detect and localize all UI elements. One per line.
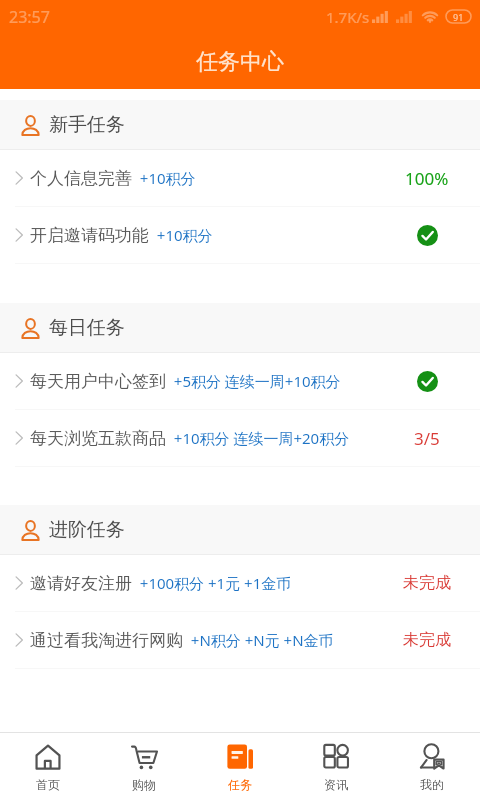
button[interactable]: 通过看我淘进行网购 +N积分 +N元 +N金币	[0, 612, 480, 668]
staticText: 每日任务	[49, 316, 125, 340]
staticText: 1.7K/s	[326, 7, 370, 27]
staticText: 我的	[420, 777, 444, 792]
staticText: 进阶任务	[49, 518, 125, 542]
staticText: 未完成	[403, 573, 451, 593]
button[interactable]: 购物	[96, 733, 192, 800]
button[interactable]: 首页	[0, 733, 96, 800]
button[interactable]: 任务	[192, 733, 288, 800]
staticText: 任务中心	[196, 48, 284, 76]
staticText: 购物	[132, 777, 156, 792]
staticText: 100%	[405, 167, 449, 190]
staticText: 新手任务	[49, 113, 125, 137]
staticText: 3/5	[414, 427, 440, 450]
button[interactable]: 每天浏览五款商品 +10积分 连续一周+20积分	[0, 410, 480, 466]
staticText: 每天浏览五款商品 +10积分 连续一周+20积分	[30, 428, 350, 449]
button[interactable]: 我的	[384, 733, 480, 800]
button[interactable]: 开启邀请码功能 +10积分	[0, 207, 480, 263]
staticText: 任务	[228, 777, 252, 792]
button[interactable]: 每天用户中心签到 +5积分 连续一周+10积分	[0, 353, 480, 409]
staticText: 个人信息完善 +10积分	[30, 168, 196, 189]
button[interactable]: 邀请好友注册 +100积分 +1元 +1金币	[0, 555, 480, 611]
staticText: 资讯	[324, 777, 348, 792]
staticText: 邀请好友注册 +100积分 +1元 +1金币	[30, 573, 292, 594]
staticText: 91	[453, 11, 464, 23]
button[interactable]: 资讯	[288, 733, 384, 800]
staticText: 通过看我淘进行网购 +N积分 +N元 +N金币	[30, 630, 334, 651]
staticText: 开启邀请码功能 +10积分	[30, 225, 213, 246]
button[interactable]: 个人信息完善 +10积分	[0, 150, 480, 206]
staticText: 首页	[36, 777, 60, 792]
staticText: 未完成	[403, 630, 451, 650]
staticText: 每天用户中心签到 +5积分 连续一周+10积分	[30, 371, 341, 392]
staticText: 23:57	[9, 6, 50, 28]
